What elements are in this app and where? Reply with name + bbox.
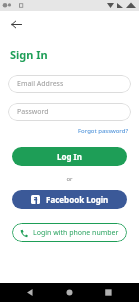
- staticText: Password: [17, 107, 49, 117]
- staticText: Facebook Login: [46, 194, 109, 205]
- staticText: Log In: [57, 151, 82, 162]
- staticText: Sign In: [10, 47, 48, 62]
- button[interactable]: Facebook Login: [12, 190, 127, 209]
- staticText: or: [66, 175, 73, 183]
- staticText: Login with phone number: [33, 228, 119, 238]
- button[interactable]: Log In: [12, 147, 127, 166]
- button[interactable]: Login with phone number: [12, 223, 127, 242]
- button[interactable]: Back: [6, 14, 26, 34]
- button[interactable]: Forgot password?: [77, 126, 130, 136]
- button[interactable]: Email Address: [8, 75, 131, 93]
- staticText: Email Address: [17, 79, 64, 89]
- button[interactable]: Password: [8, 103, 131, 121]
- staticText: Forgot password?: [78, 127, 129, 135]
